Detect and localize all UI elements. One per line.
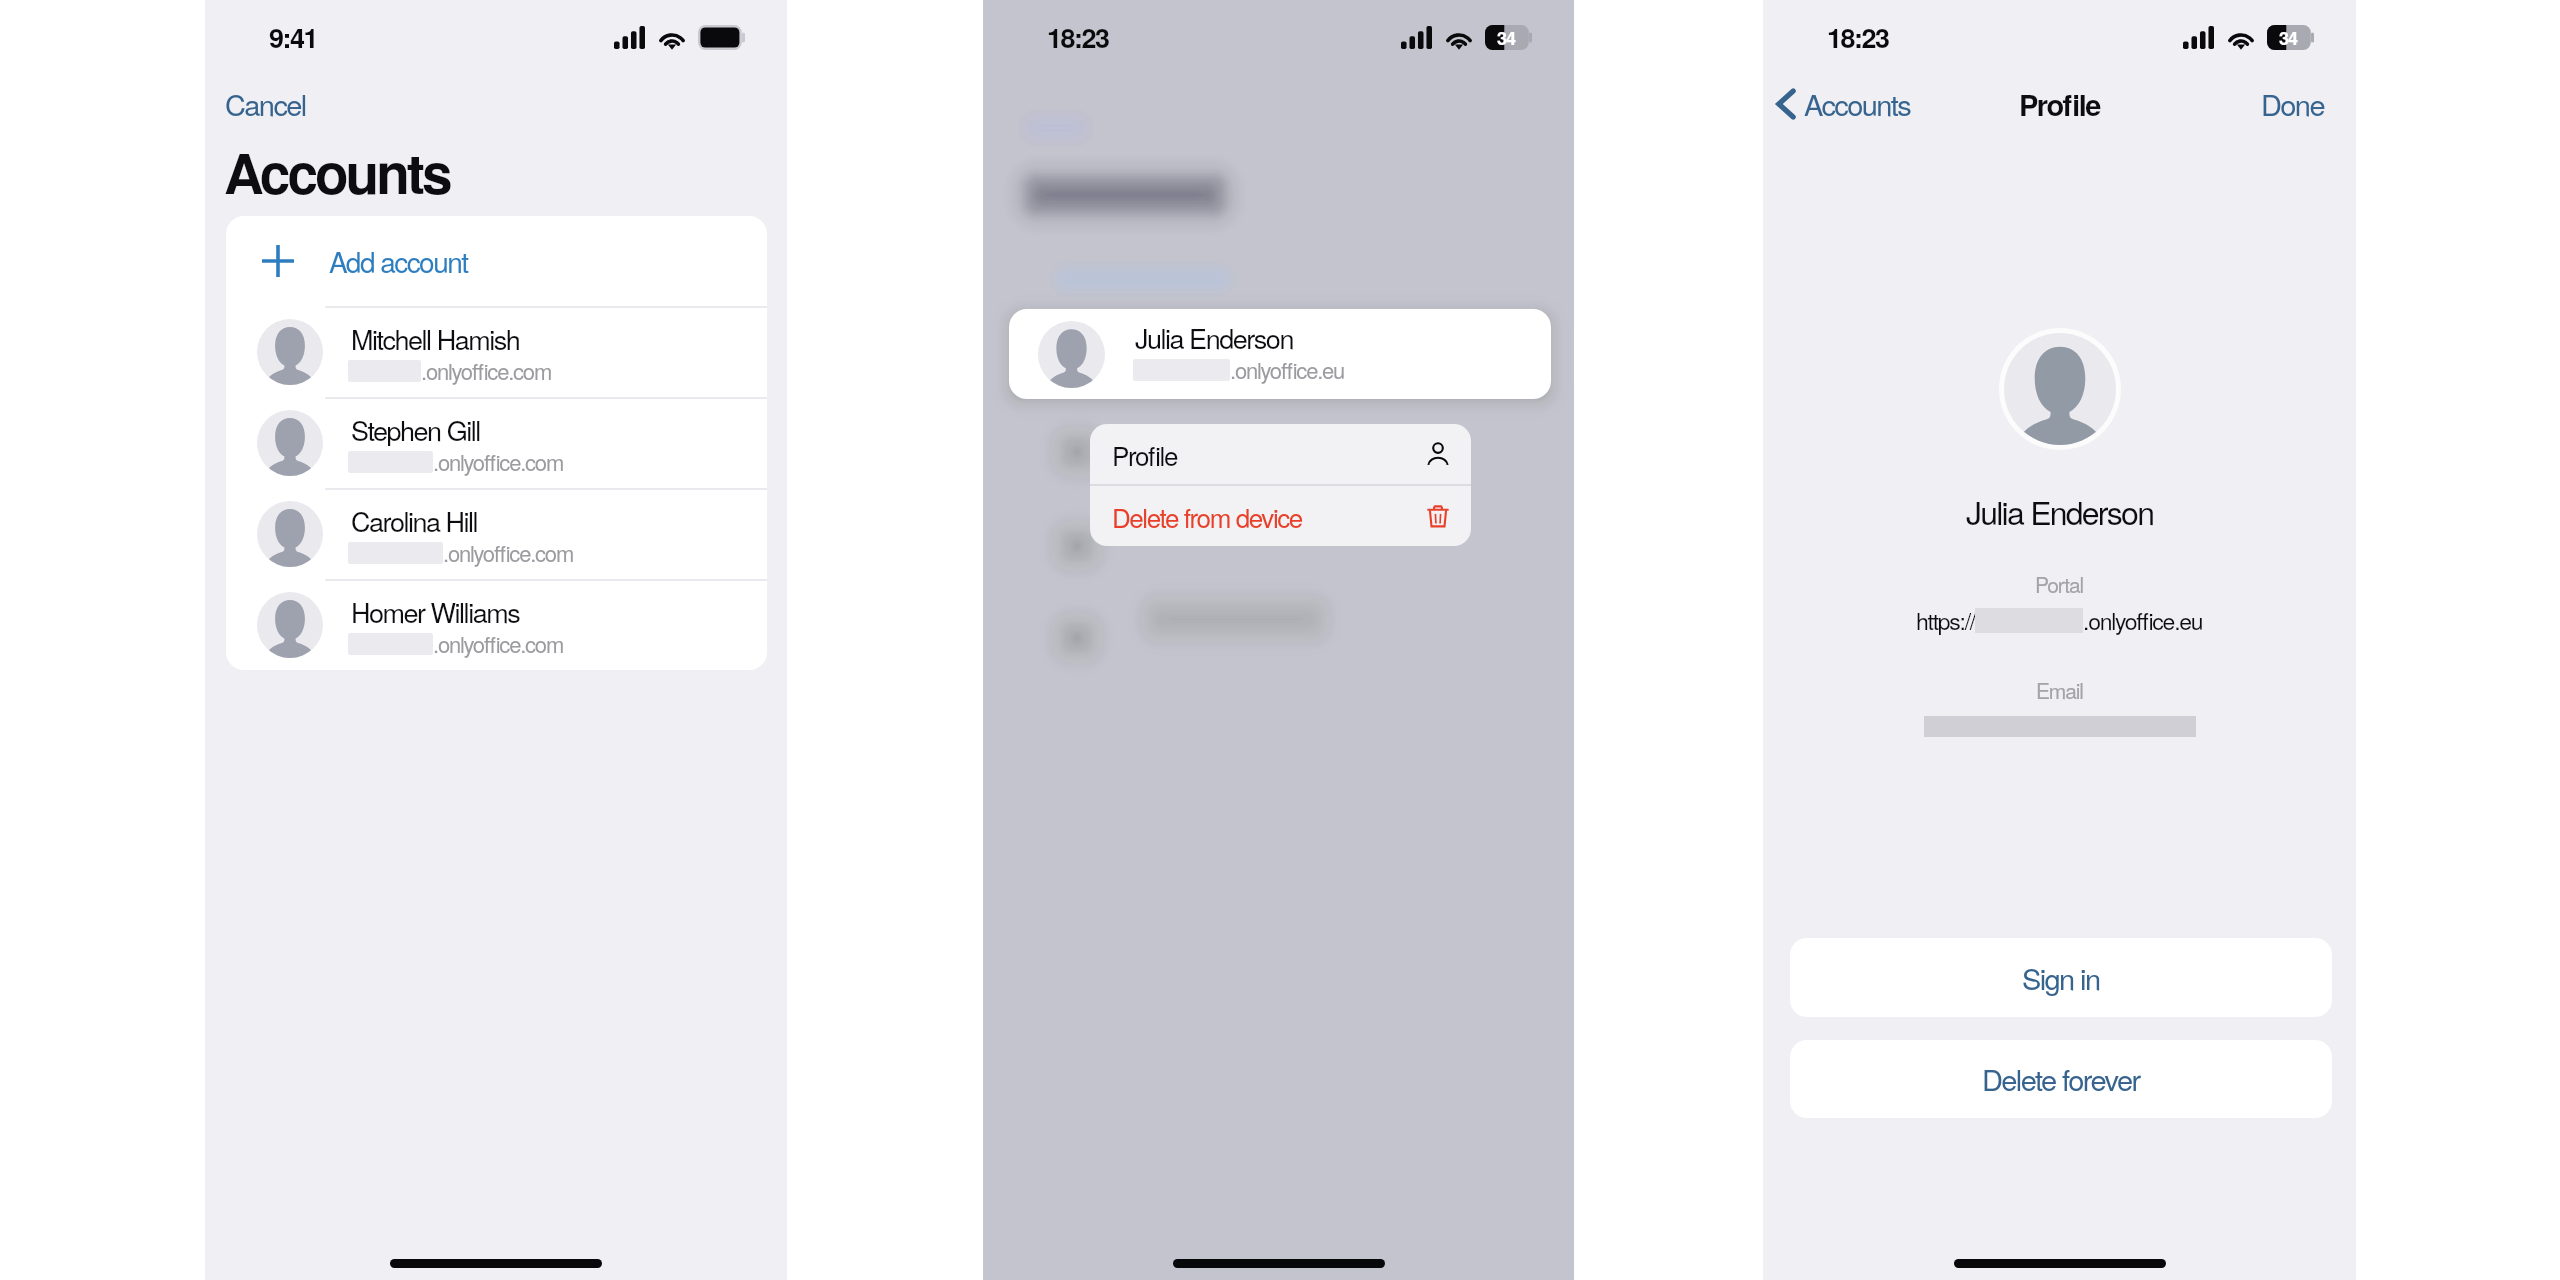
staticText: Add account <box>329 241 468 281</box>
staticText: .onlyoffice.eu <box>2083 604 2203 637</box>
staticText: Delete forever <box>1982 1058 2140 1100</box>
staticText: 9:41 <box>269 18 318 57</box>
button[interactable]: Sign in <box>1790 938 2332 1017</box>
staticText: Cancel <box>225 83 306 125</box>
staticText: Delete from device <box>1112 498 1302 535</box>
button[interactable]: Profile <box>1112 424 1451 484</box>
staticText: Accounts <box>224 132 450 211</box>
staticText: Profile <box>1112 436 1177 473</box>
staticText: 34 <box>1497 25 1516 50</box>
staticText: .onlyoffice.com <box>443 537 573 569</box>
staticText: 18:23 <box>1047 18 1109 57</box>
button[interactable]: Done <box>2245 83 2356 125</box>
other: Add account <box>262 245 294 277</box>
button[interactable]: Cancel <box>205 81 324 127</box>
staticText: Carolina Hill <box>351 501 478 540</box>
other: Profile <box>1425 441 1451 467</box>
button[interactable]: Julia Enderson <box>1009 309 1551 399</box>
other: Delete from device <box>1425 503 1451 529</box>
staticText: .onlyoffice.com <box>421 355 551 387</box>
staticText: .onlyoffice.com <box>433 446 563 478</box>
staticText: Julia Enderson <box>1135 318 1293 357</box>
button[interactable]: Stephen Gill <box>226 397 767 488</box>
button[interactable]: Add account <box>226 216 767 306</box>
button[interactable]: Homer Williams <box>226 579 767 670</box>
staticText: 18:23 <box>1827 18 1889 57</box>
staticText: Profile <box>2019 83 2100 125</box>
staticText: .onlyoffice.com <box>433 628 563 660</box>
button[interactable]: Back to Accounts <box>1763 83 1925 125</box>
staticText: Julia Enderson <box>1966 488 2154 534</box>
staticText: Accounts <box>1804 83 1911 125</box>
staticText: Mitchell Hamish <box>351 319 520 358</box>
staticText: .onlyoffice.eu <box>1230 354 1345 386</box>
staticText: Email <box>2036 675 2083 705</box>
staticText: Stephen Gill <box>351 410 480 449</box>
staticText: Portal <box>2035 569 2084 599</box>
other: Back to Accounts <box>1777 89 1795 119</box>
button[interactable]: Carolina Hill <box>226 488 767 579</box>
staticText: Done <box>2261 83 2324 125</box>
staticText: Homer Williams <box>351 592 520 631</box>
button[interactable]: Delete forever <box>1790 1040 2332 1118</box>
staticText: Sign in <box>2022 957 2100 999</box>
staticText: https:// <box>1916 604 1975 637</box>
button[interactable]: Delete from device <box>1112 486 1451 546</box>
button[interactable]: Mitchell Hamish <box>226 306 767 397</box>
staticText: 34 <box>2279 25 2298 50</box>
